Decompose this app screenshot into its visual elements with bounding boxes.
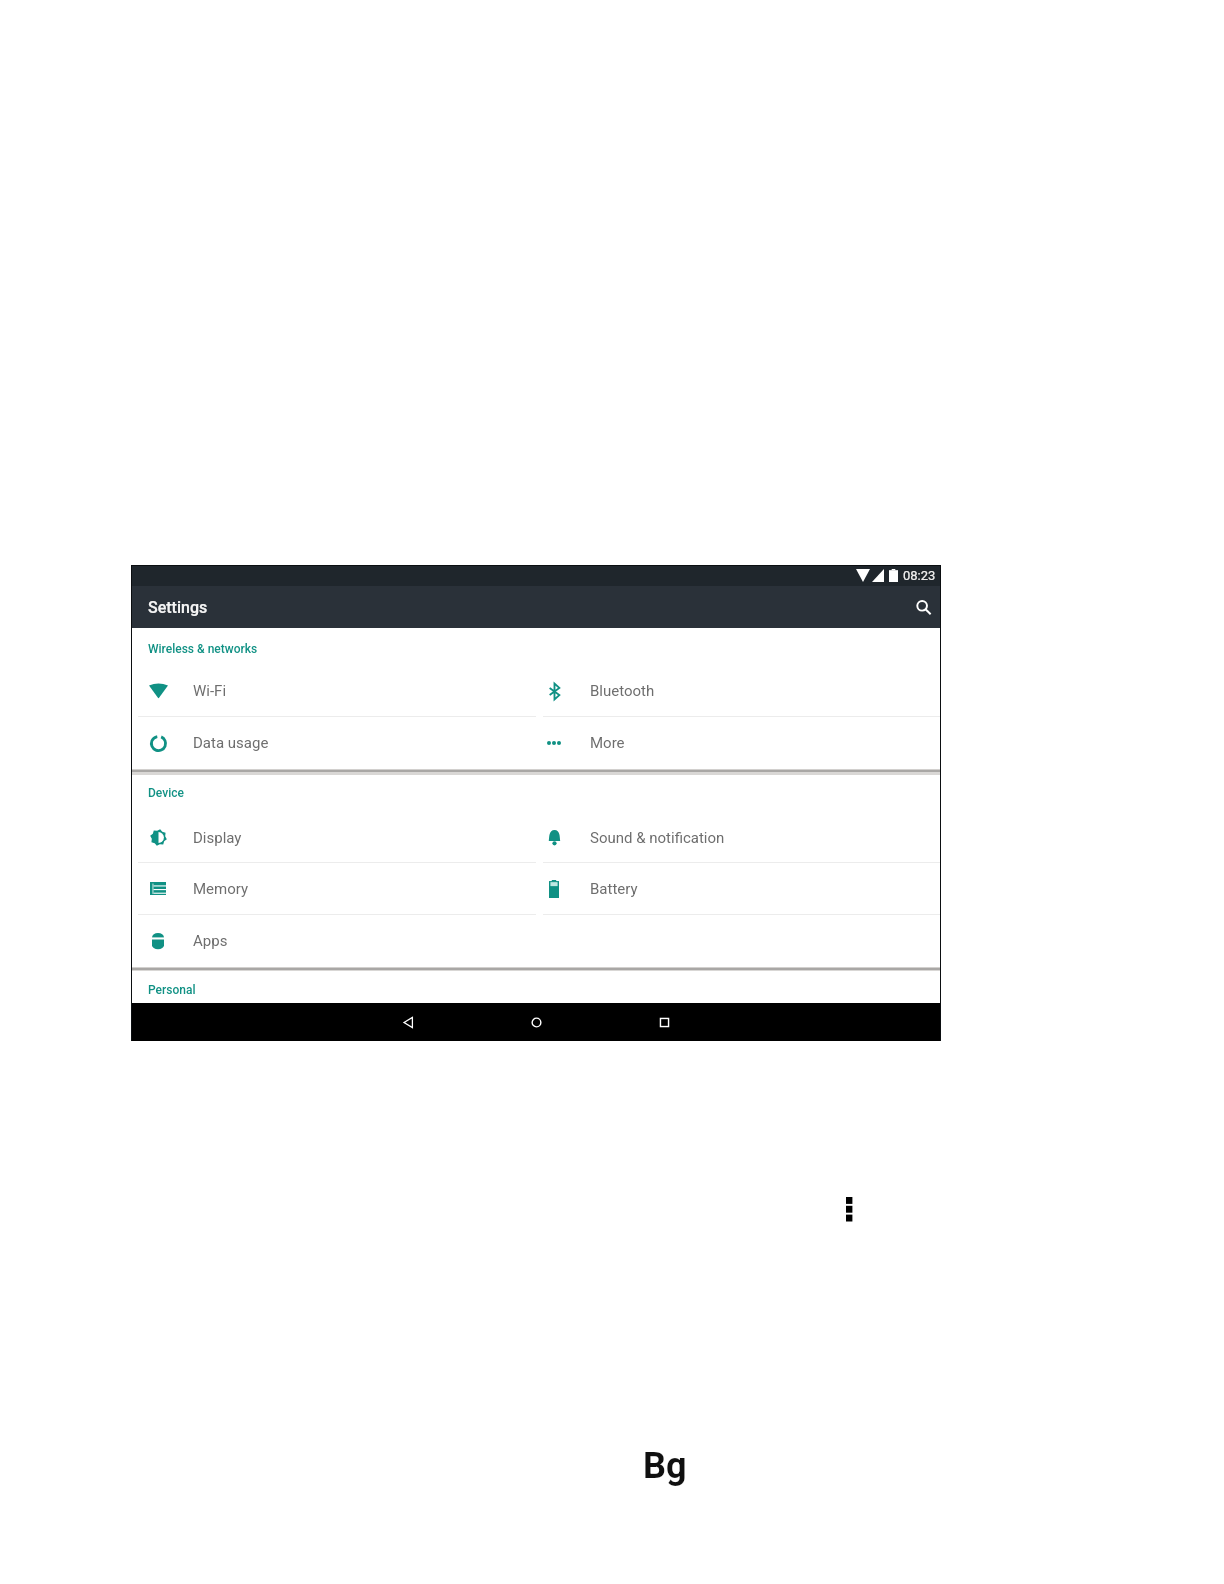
staticText: Data usage xyxy=(193,734,269,752)
button[interactable]: Battery xyxy=(536,863,941,914)
button[interactable]: More xyxy=(536,717,941,769)
button[interactable]: Wi-Fi xyxy=(131,666,536,716)
button[interactable]: Home xyxy=(516,1003,556,1041)
button[interactable]: Apps xyxy=(131,915,536,967)
staticText: Bluetooth xyxy=(590,682,655,700)
staticText: Personal xyxy=(148,983,196,997)
staticText: Display xyxy=(193,829,242,847)
staticText: Memory xyxy=(193,880,249,898)
staticText: Sound & notification xyxy=(590,829,725,847)
button[interactable]: Recents xyxy=(644,1003,684,1041)
staticText: Device xyxy=(148,786,184,800)
staticText: More xyxy=(590,734,625,752)
staticText: Bg xyxy=(643,1445,687,1487)
button[interactable]: Data usage xyxy=(131,717,536,769)
staticText: 08:23 xyxy=(903,568,936,583)
button[interactable]: Search xyxy=(907,591,939,623)
staticText: Apps xyxy=(193,932,228,950)
staticText: Wireless & networks xyxy=(148,642,258,656)
staticText: Battery xyxy=(590,880,638,898)
button[interactable]: Bluetooth xyxy=(536,666,941,716)
staticText: Wi-Fi xyxy=(193,682,227,700)
button[interactable]: Memory xyxy=(131,863,536,914)
button[interactable]: Display xyxy=(131,813,536,862)
button[interactable]: Back xyxy=(388,1003,428,1041)
staticText: Settings xyxy=(148,598,208,617)
button[interactable]: Sound & notification xyxy=(536,813,941,862)
